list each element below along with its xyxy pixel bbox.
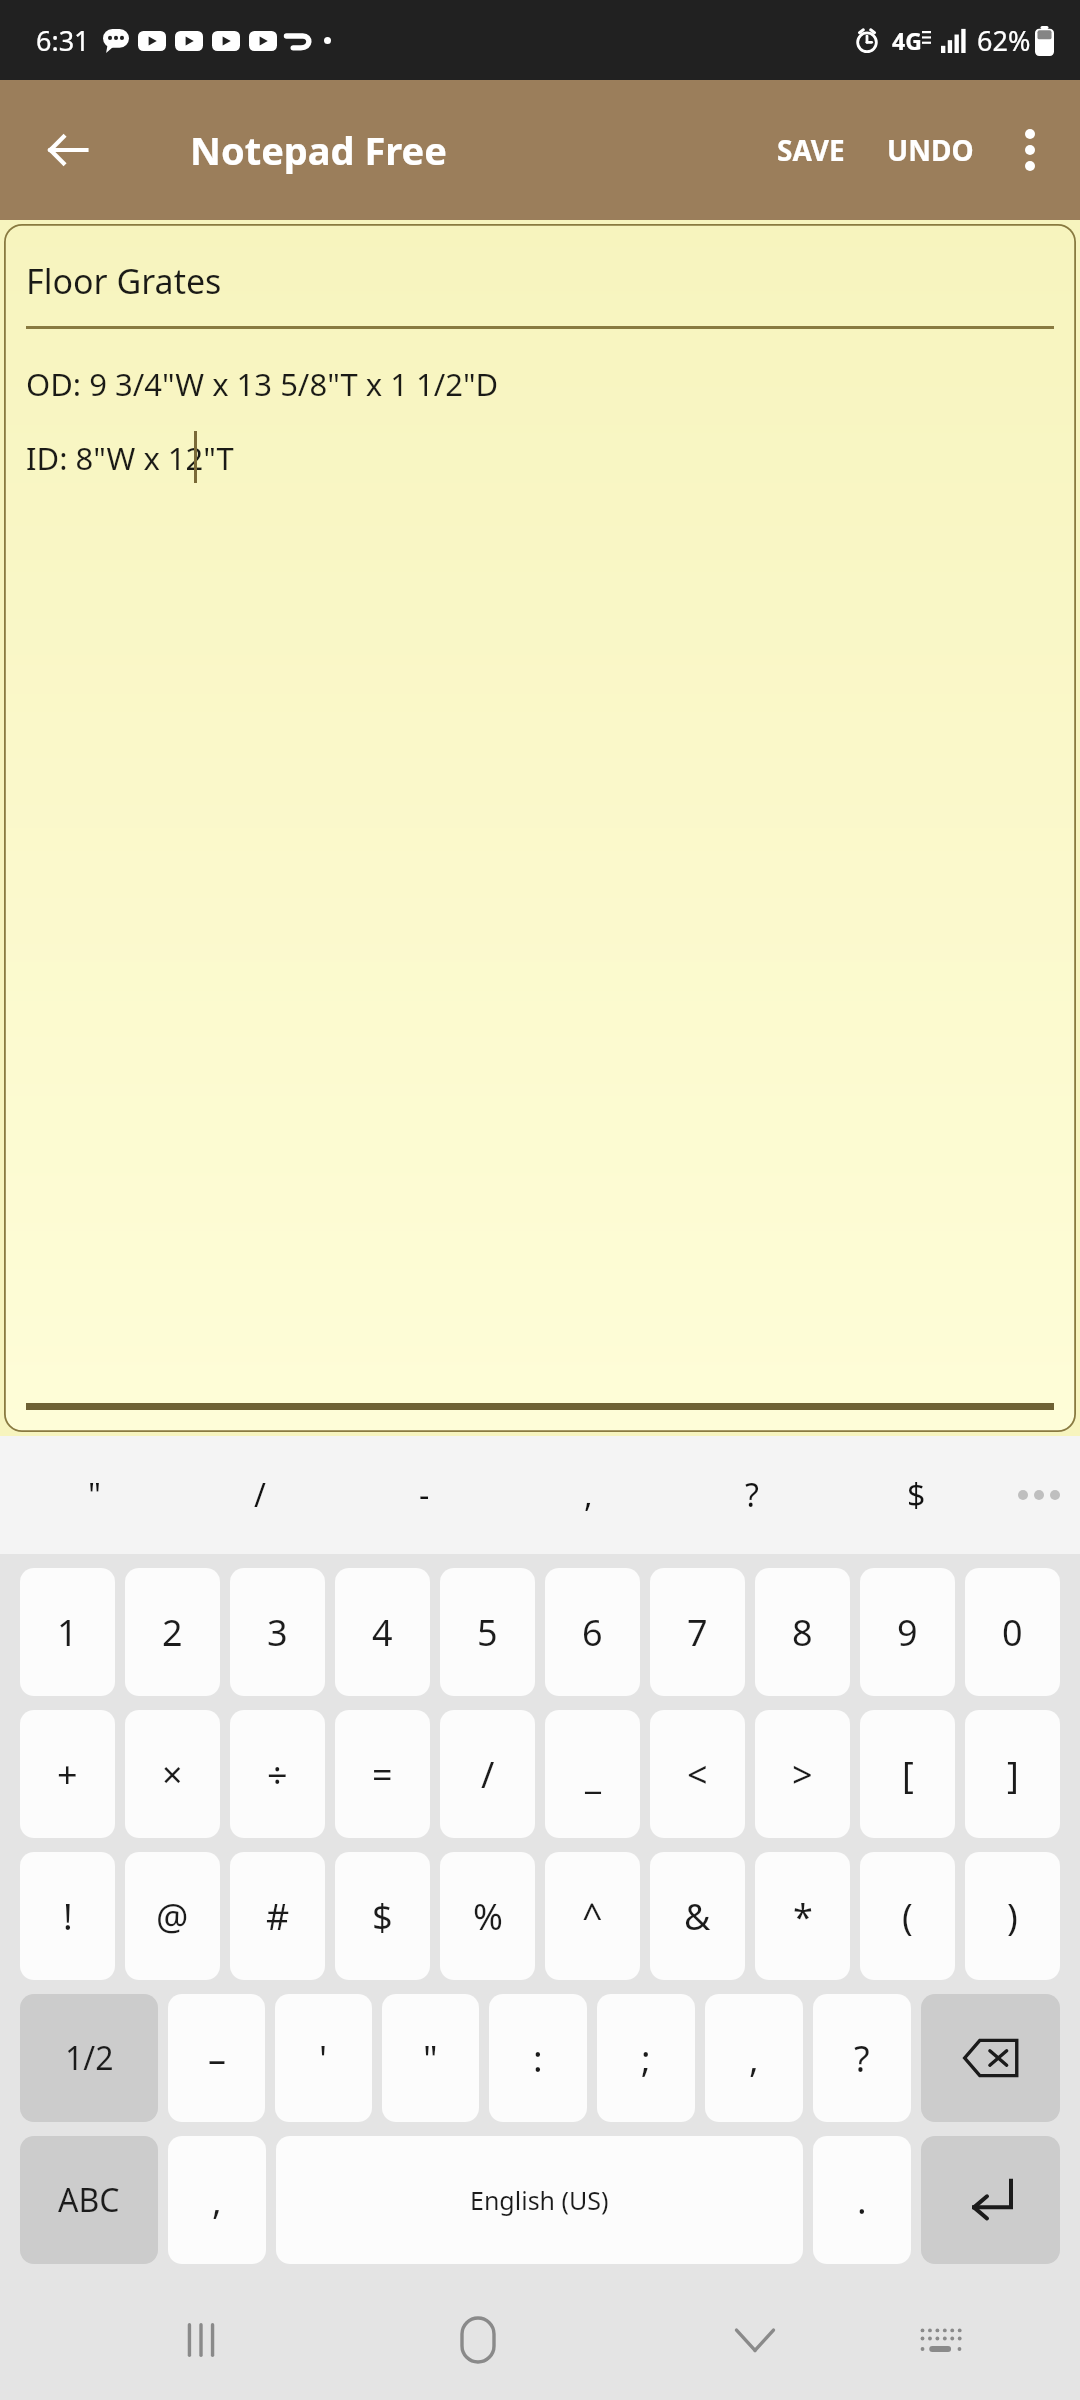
staticText: 4G bbox=[892, 25, 922, 56]
button[interactable]: > bbox=[755, 1710, 850, 1838]
staticText: ^ bbox=[582, 1892, 603, 1941]
staticText: ID: 8"W x 12"T bbox=[26, 437, 234, 479]
button[interactable]: 1/2 bbox=[20, 1994, 158, 2122]
button[interactable]: ( bbox=[860, 1852, 955, 1980]
button[interactable]: ^ bbox=[545, 1852, 640, 1980]
staticText: " bbox=[423, 2034, 438, 2083]
button[interactable]: ABC bbox=[20, 2136, 158, 2264]
staticText: UNDO bbox=[887, 131, 974, 169]
button[interactable]: / bbox=[177, 1436, 342, 1554]
staticText: _ bbox=[585, 1750, 601, 1799]
button[interactable]: " bbox=[382, 1994, 479, 2122]
staticText: ) bbox=[1007, 1892, 1018, 1941]
button[interactable]: $ bbox=[834, 1436, 998, 1554]
button[interactable]: ; bbox=[597, 1994, 695, 2122]
button[interactable]: 8 bbox=[755, 1568, 850, 1696]
button[interactable]: * bbox=[755, 1852, 850, 1980]
button[interactable]: Floor Grates bbox=[4, 224, 1076, 1432]
button[interactable]: : bbox=[489, 1994, 587, 2122]
staticText: , bbox=[584, 1473, 593, 1517]
staticText: 7 bbox=[687, 1608, 708, 1657]
button[interactable]: _ bbox=[545, 1710, 640, 1838]
staticText: : bbox=[533, 2034, 543, 2083]
staticText: % bbox=[473, 1892, 503, 1941]
button[interactable]: Change keyboard bbox=[850, 2280, 1032, 2400]
button[interactable]: @ bbox=[125, 1852, 220, 1980]
button[interactable]: × bbox=[125, 1710, 220, 1838]
button[interactable]: ? bbox=[813, 1994, 911, 2122]
staticText: " bbox=[88, 1473, 102, 1517]
staticText: . bbox=[857, 2176, 867, 2225]
button[interactable]: ? bbox=[670, 1436, 834, 1554]
staticText: 6 bbox=[582, 1608, 603, 1657]
staticText: SAVE bbox=[777, 131, 845, 169]
button[interactable]: = bbox=[335, 1710, 430, 1838]
button[interactable]: UNDO bbox=[873, 115, 988, 185]
staticText: / bbox=[481, 1750, 495, 1799]
button[interactable]: / bbox=[440, 1710, 535, 1838]
staticText: [ bbox=[902, 1750, 914, 1799]
button[interactable]: 7 bbox=[650, 1568, 745, 1696]
button[interactable]: ' bbox=[275, 1994, 372, 2122]
button[interactable]: 1 bbox=[20, 1568, 115, 1696]
button[interactable]: 2 bbox=[125, 1568, 220, 1696]
button[interactable]: Enter bbox=[921, 2136, 1060, 2264]
button[interactable]: Recents bbox=[105, 2280, 296, 2400]
staticText: $ bbox=[907, 1473, 926, 1517]
staticText: = bbox=[372, 1750, 393, 1799]
staticText: 0 bbox=[1002, 1608, 1023, 1657]
button[interactable]: % bbox=[440, 1852, 535, 1980]
staticText: , bbox=[212, 2176, 222, 2225]
staticText: OD: 9 3/4"W x 13 5/8"T x 1 1/2"D bbox=[26, 363, 499, 405]
button[interactable]: 3 bbox=[230, 1568, 325, 1696]
button[interactable]: SAVE bbox=[763, 115, 859, 185]
button[interactable]: – bbox=[168, 1994, 265, 2122]
button[interactable]: ] bbox=[965, 1710, 1060, 1838]
staticText: 6:31 bbox=[36, 22, 90, 59]
staticText: ; bbox=[641, 2034, 651, 2083]
button[interactable]: & bbox=[650, 1852, 745, 1980]
button[interactable]: Backspace bbox=[921, 1994, 1060, 2122]
staticText: English (US) bbox=[470, 2183, 609, 2217]
button[interactable]: < bbox=[650, 1710, 745, 1838]
button[interactable]: English (US) bbox=[276, 2136, 803, 2264]
button[interactable]: More options bbox=[994, 114, 1066, 186]
staticText: 9 bbox=[897, 1608, 918, 1657]
button[interactable]: Home bbox=[382, 2280, 573, 2400]
staticText: 5 bbox=[477, 1608, 498, 1657]
button[interactable]: [ bbox=[860, 1710, 955, 1838]
button[interactable]: ÷ bbox=[230, 1710, 325, 1838]
button[interactable]: " bbox=[12, 1436, 177, 1554]
staticText: # bbox=[266, 1892, 290, 1941]
button[interactable]: , bbox=[705, 1994, 803, 2122]
staticText: ? bbox=[745, 1473, 759, 1517]
staticText: 4 bbox=[372, 1608, 393, 1657]
staticText: + bbox=[57, 1750, 78, 1799]
staticText: < bbox=[687, 1750, 708, 1799]
button[interactable]: . bbox=[813, 2136, 911, 2264]
button[interactable]: Hide keyboard bbox=[659, 2280, 850, 2400]
staticText: – bbox=[208, 2034, 226, 2083]
button[interactable]: 4 bbox=[335, 1568, 430, 1696]
staticText: 1 bbox=[57, 1608, 78, 1657]
staticText: 1/2 bbox=[65, 2036, 114, 2080]
button[interactable]: # bbox=[230, 1852, 325, 1980]
button[interactable]: , bbox=[168, 2136, 266, 2264]
button[interactable]: - bbox=[342, 1436, 506, 1554]
staticText: & bbox=[684, 1892, 711, 1941]
button[interactable]: 9 bbox=[860, 1568, 955, 1696]
button[interactable]: 6 bbox=[545, 1568, 640, 1696]
button[interactable]: $ bbox=[335, 1852, 430, 1980]
button[interactable]: 5 bbox=[440, 1568, 535, 1696]
staticText: 3 bbox=[267, 1608, 288, 1657]
button[interactable]: 0 bbox=[965, 1568, 1060, 1696]
staticText: 8 bbox=[792, 1608, 813, 1657]
button[interactable]: + bbox=[20, 1710, 115, 1838]
button[interactable]: More suggestions bbox=[998, 1436, 1080, 1554]
staticText: @ bbox=[156, 1892, 189, 1941]
button[interactable]: ) bbox=[965, 1852, 1060, 1980]
button[interactable]: ! bbox=[20, 1852, 115, 1980]
button[interactable]: Back bbox=[28, 110, 108, 190]
button[interactable]: , bbox=[506, 1436, 670, 1554]
staticText: × bbox=[162, 1750, 183, 1799]
